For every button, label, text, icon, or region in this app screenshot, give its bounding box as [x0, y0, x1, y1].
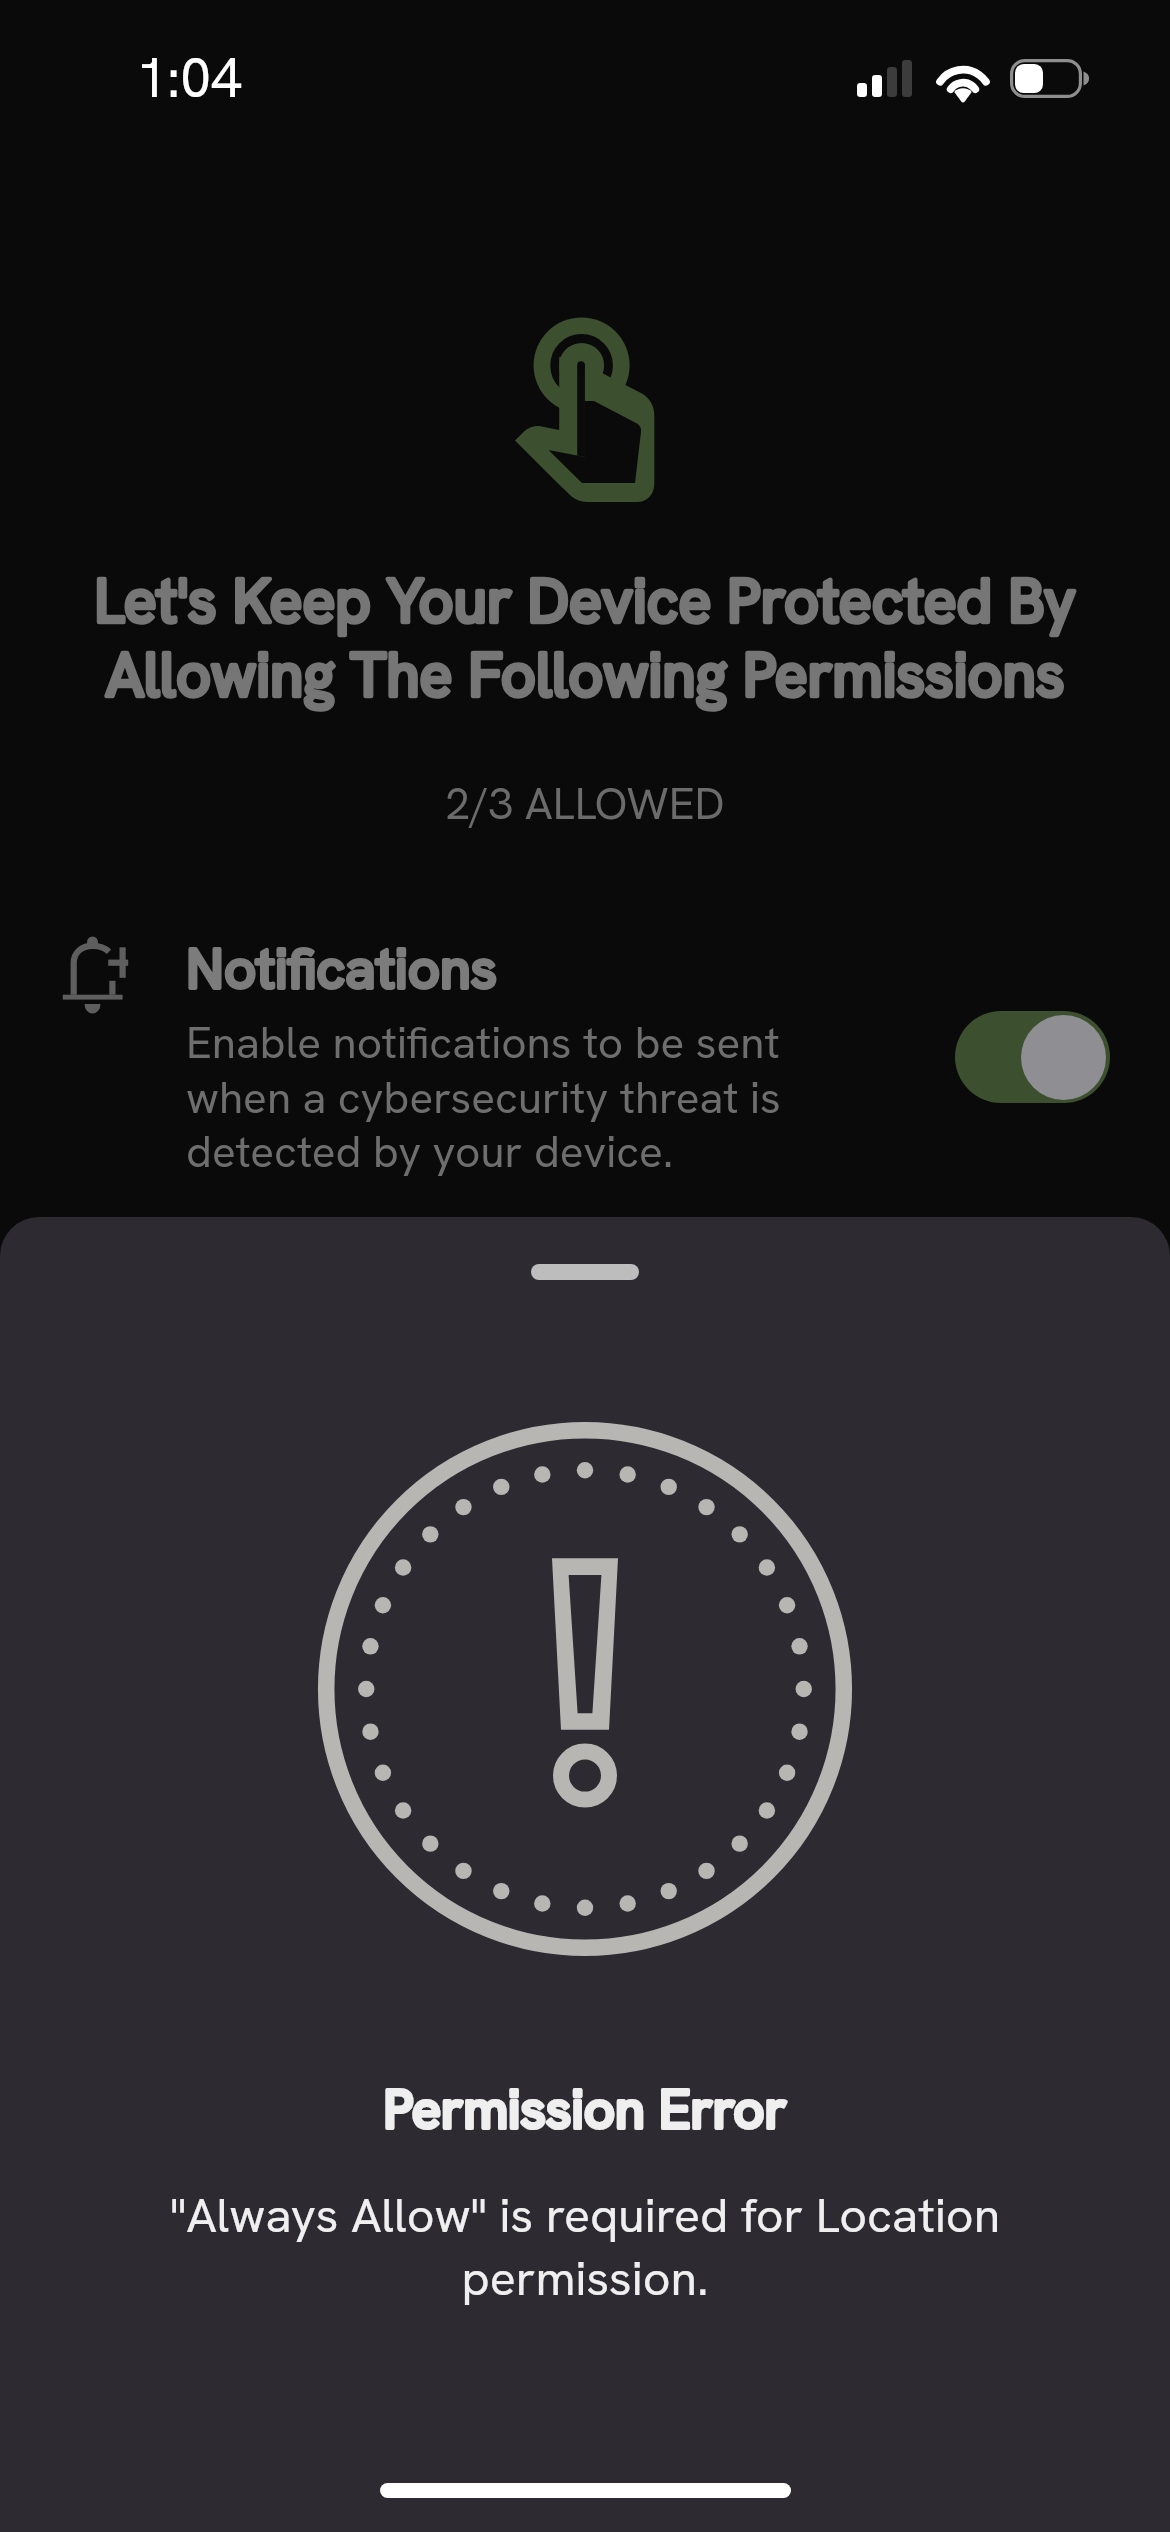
staticText: Notifications [186, 932, 804, 1005]
staticText: "Always Allow" is required for Location … [150, 2184, 1020, 2310]
staticText: Notifications [186, 932, 804, 1005]
staticText: Let's Keep Your Device Protected By Allo… [75, 561, 1095, 715]
staticText: Enable notifications to be sent when a c… [186, 1014, 804, 1180]
staticText: 2/3 ALLOWED [0, 775, 1170, 832]
staticText: Permission Error [0, 2074, 1170, 2145]
button[interactable]: Notifications [62, 932, 1110, 1180]
staticText: Let's Keep Your Device Protected By Allo… [75, 561, 1095, 715]
staticText: 1:04 [136, 42, 242, 114]
button[interactable]: Toggle notifications [955, 1011, 1110, 1103]
staticText: Permission Error [0, 2074, 1170, 2145]
